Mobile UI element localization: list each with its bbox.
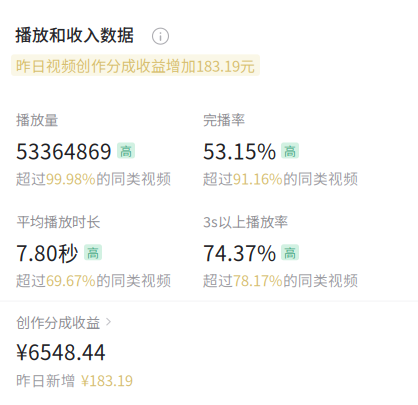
staticText: 的同类视频	[283, 167, 358, 189]
staticText: 74.37%	[203, 237, 276, 267]
staticText: 超过	[16, 167, 46, 189]
staticText: 超过	[203, 167, 233, 189]
staticText: 53.15%	[203, 135, 276, 165]
staticText: 超过	[203, 269, 233, 291]
staticText: 7.80秒	[16, 237, 79, 267]
staticText: 创作分成收益	[16, 312, 100, 332]
staticText: 的同类视频	[283, 269, 358, 291]
staticText: 超过	[16, 269, 46, 291]
staticText: ¥6548.44	[16, 336, 106, 366]
staticText: 高	[120, 142, 132, 159]
button[interactable]: 创作分成收益	[0, 302, 418, 404]
staticText: 完播率	[203, 109, 245, 129]
staticText: 播放量	[16, 109, 58, 129]
staticText: ¥183.19	[81, 369, 133, 390]
staticText: 的同类视频	[96, 167, 171, 189]
staticText: 高	[284, 244, 296, 261]
staticText: 高	[87, 244, 99, 261]
staticText: 69.67%	[46, 269, 96, 291]
staticText: 53364869	[16, 135, 112, 165]
staticText: 78.17%	[233, 269, 283, 291]
staticText: 高	[284, 142, 296, 159]
staticText: 3s以上播放率	[203, 211, 288, 231]
staticText: 播放和收入数据	[15, 22, 134, 46]
staticText: 昨日新增	[16, 369, 76, 390]
staticText: 91.16%	[233, 167, 283, 189]
staticText: 平均播放时长	[16, 211, 100, 231]
staticText: 99.98%	[46, 167, 96, 189]
staticText: 的同类视频	[96, 269, 171, 291]
staticText: 昨日视频创作分成收益增加183.19元	[16, 54, 255, 76]
